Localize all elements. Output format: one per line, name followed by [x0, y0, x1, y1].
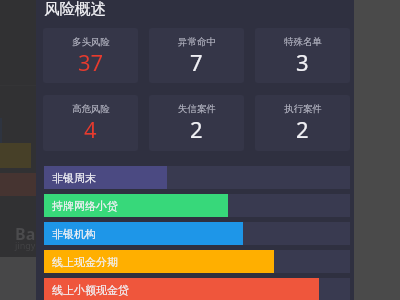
staticText: 多头风险 [72, 36, 110, 48]
staticText: 7 [190, 47, 203, 77]
staticText: 3 [296, 47, 309, 77]
staticText: 4 [84, 114, 97, 144]
staticText: 非银机构 [52, 227, 96, 241]
staticText: 37 [78, 47, 104, 77]
staticText: 2 [296, 114, 309, 144]
button[interactable]: 持牌网络小贷 [44, 194, 350, 217]
button[interactable]: 多头风险 [43, 28, 138, 83]
staticText: 高危风险 [72, 103, 110, 115]
button[interactable]: 执行案件 [255, 95, 350, 151]
staticText: 非银周末 [52, 171, 96, 185]
button[interactable]: 非银机构 [44, 222, 350, 245]
staticText: 2 [190, 114, 203, 144]
button[interactable]: 失信案件 [149, 95, 244, 151]
button[interactable]: 特殊名单 [255, 28, 350, 83]
staticText: 特殊名单 [284, 36, 322, 48]
staticText: jingy [15, 239, 36, 251]
button[interactable]: 线上小额现金贷 [44, 278, 350, 300]
staticText: 持牌网络小贷 [52, 199, 118, 213]
button[interactable]: 非银周末 [44, 166, 350, 189]
staticText: 失信案件 [178, 103, 216, 115]
staticText: Ba [15, 223, 36, 245]
staticText: 风险概述 [44, 0, 106, 19]
staticText: 执行案件 [284, 103, 322, 115]
staticText: 异常命中 [178, 36, 216, 48]
staticText: 线上现金分期 [52, 255, 118, 269]
staticText: 线上小额现金贷 [52, 283, 129, 297]
button[interactable]: 高危风险 [43, 95, 138, 151]
button[interactable]: 异常命中 [149, 28, 244, 83]
button[interactable]: Close overlay [0, 0, 36, 300]
button[interactable]: 线上现金分期 [44, 250, 350, 273]
